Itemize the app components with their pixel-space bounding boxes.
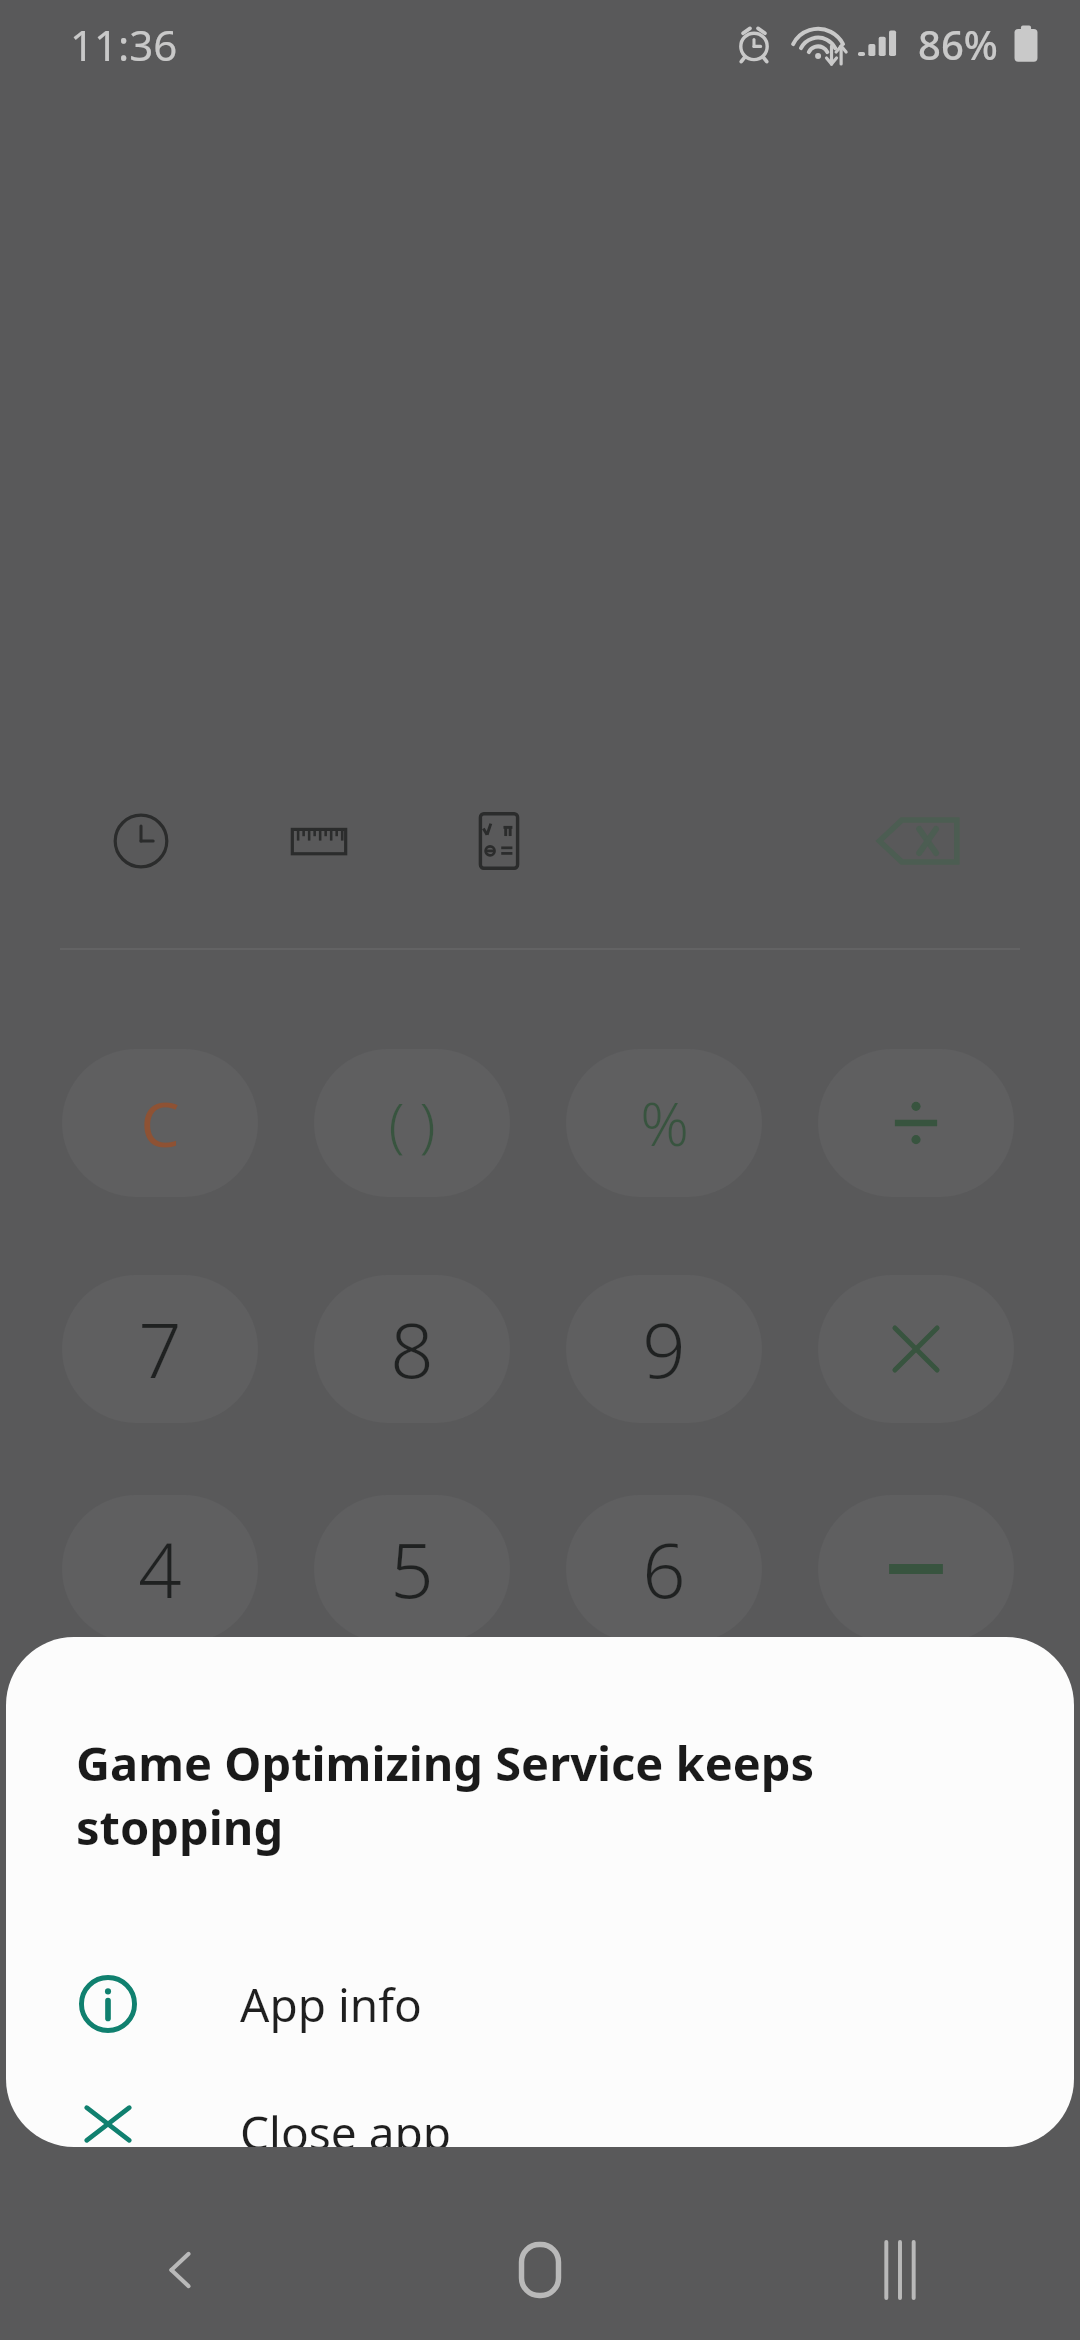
button[interactable]: Home bbox=[360, 2200, 720, 2340]
button[interactable] bbox=[818, 1049, 1014, 1197]
staticText: ( ) bbox=[388, 1084, 436, 1163]
button[interactable]: % bbox=[566, 1049, 762, 1197]
button[interactable] bbox=[818, 1275, 1014, 1423]
button[interactable] bbox=[818, 1495, 1014, 1643]
button[interactable]: C bbox=[62, 1049, 258, 1197]
button[interactable]: 9 bbox=[566, 1275, 762, 1423]
staticText: 8 bbox=[390, 1297, 434, 1401]
staticText: Game Optimizing Service keeps stopping bbox=[76, 1731, 1026, 1859]
button[interactable]: 6 bbox=[566, 1495, 762, 1643]
button[interactable]: Recent apps bbox=[720, 2200, 1080, 2340]
staticText: 9 bbox=[642, 1297, 686, 1401]
staticText: % bbox=[640, 1082, 689, 1164]
staticText: 11:36 bbox=[70, 16, 178, 73]
staticText: 7 bbox=[138, 1297, 182, 1401]
staticText: Close app bbox=[240, 2101, 452, 2147]
button[interactable]: 8 bbox=[314, 1275, 510, 1423]
button[interactable]: Unit converter bbox=[290, 812, 348, 870]
staticText: C bbox=[140, 1081, 180, 1165]
staticText: 5 bbox=[390, 1517, 434, 1621]
button[interactable]: ( ) bbox=[314, 1049, 510, 1197]
staticText: 4 bbox=[138, 1517, 182, 1621]
button[interactable]: App info bbox=[6, 1951, 1074, 2057]
staticText: 86% bbox=[918, 17, 998, 71]
button[interactable]: History bbox=[112, 812, 170, 870]
button[interactable]: 5 bbox=[314, 1495, 510, 1643]
button[interactable]: 7 bbox=[62, 1275, 258, 1423]
staticText: 6 bbox=[642, 1517, 686, 1621]
staticText: App info bbox=[240, 1973, 422, 2036]
button[interactable]: Scientific calculator bbox=[468, 810, 530, 872]
button[interactable]: 4 bbox=[62, 1495, 258, 1643]
button[interactable]: Backspace bbox=[876, 812, 962, 870]
button[interactable]: Back bbox=[0, 2200, 360, 2340]
button[interactable]: Close app bbox=[6, 2101, 1074, 2147]
